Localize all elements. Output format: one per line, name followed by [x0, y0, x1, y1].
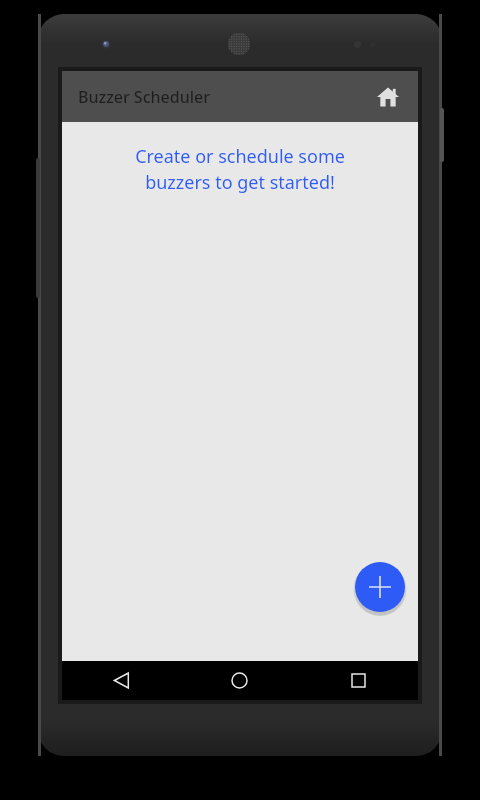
staticText: Buzzer Scheduler [78, 86, 210, 108]
button[interactable]: Recent apps [299, 661, 418, 700]
staticText: Create or schedule some buzzers to get s… [82, 144, 398, 195]
button[interactable]: Back [62, 661, 180, 700]
button[interactable]: Add buzzer [355, 562, 405, 612]
button[interactable]: Home [180, 661, 299, 700]
button[interactable]: Home [368, 77, 408, 117]
